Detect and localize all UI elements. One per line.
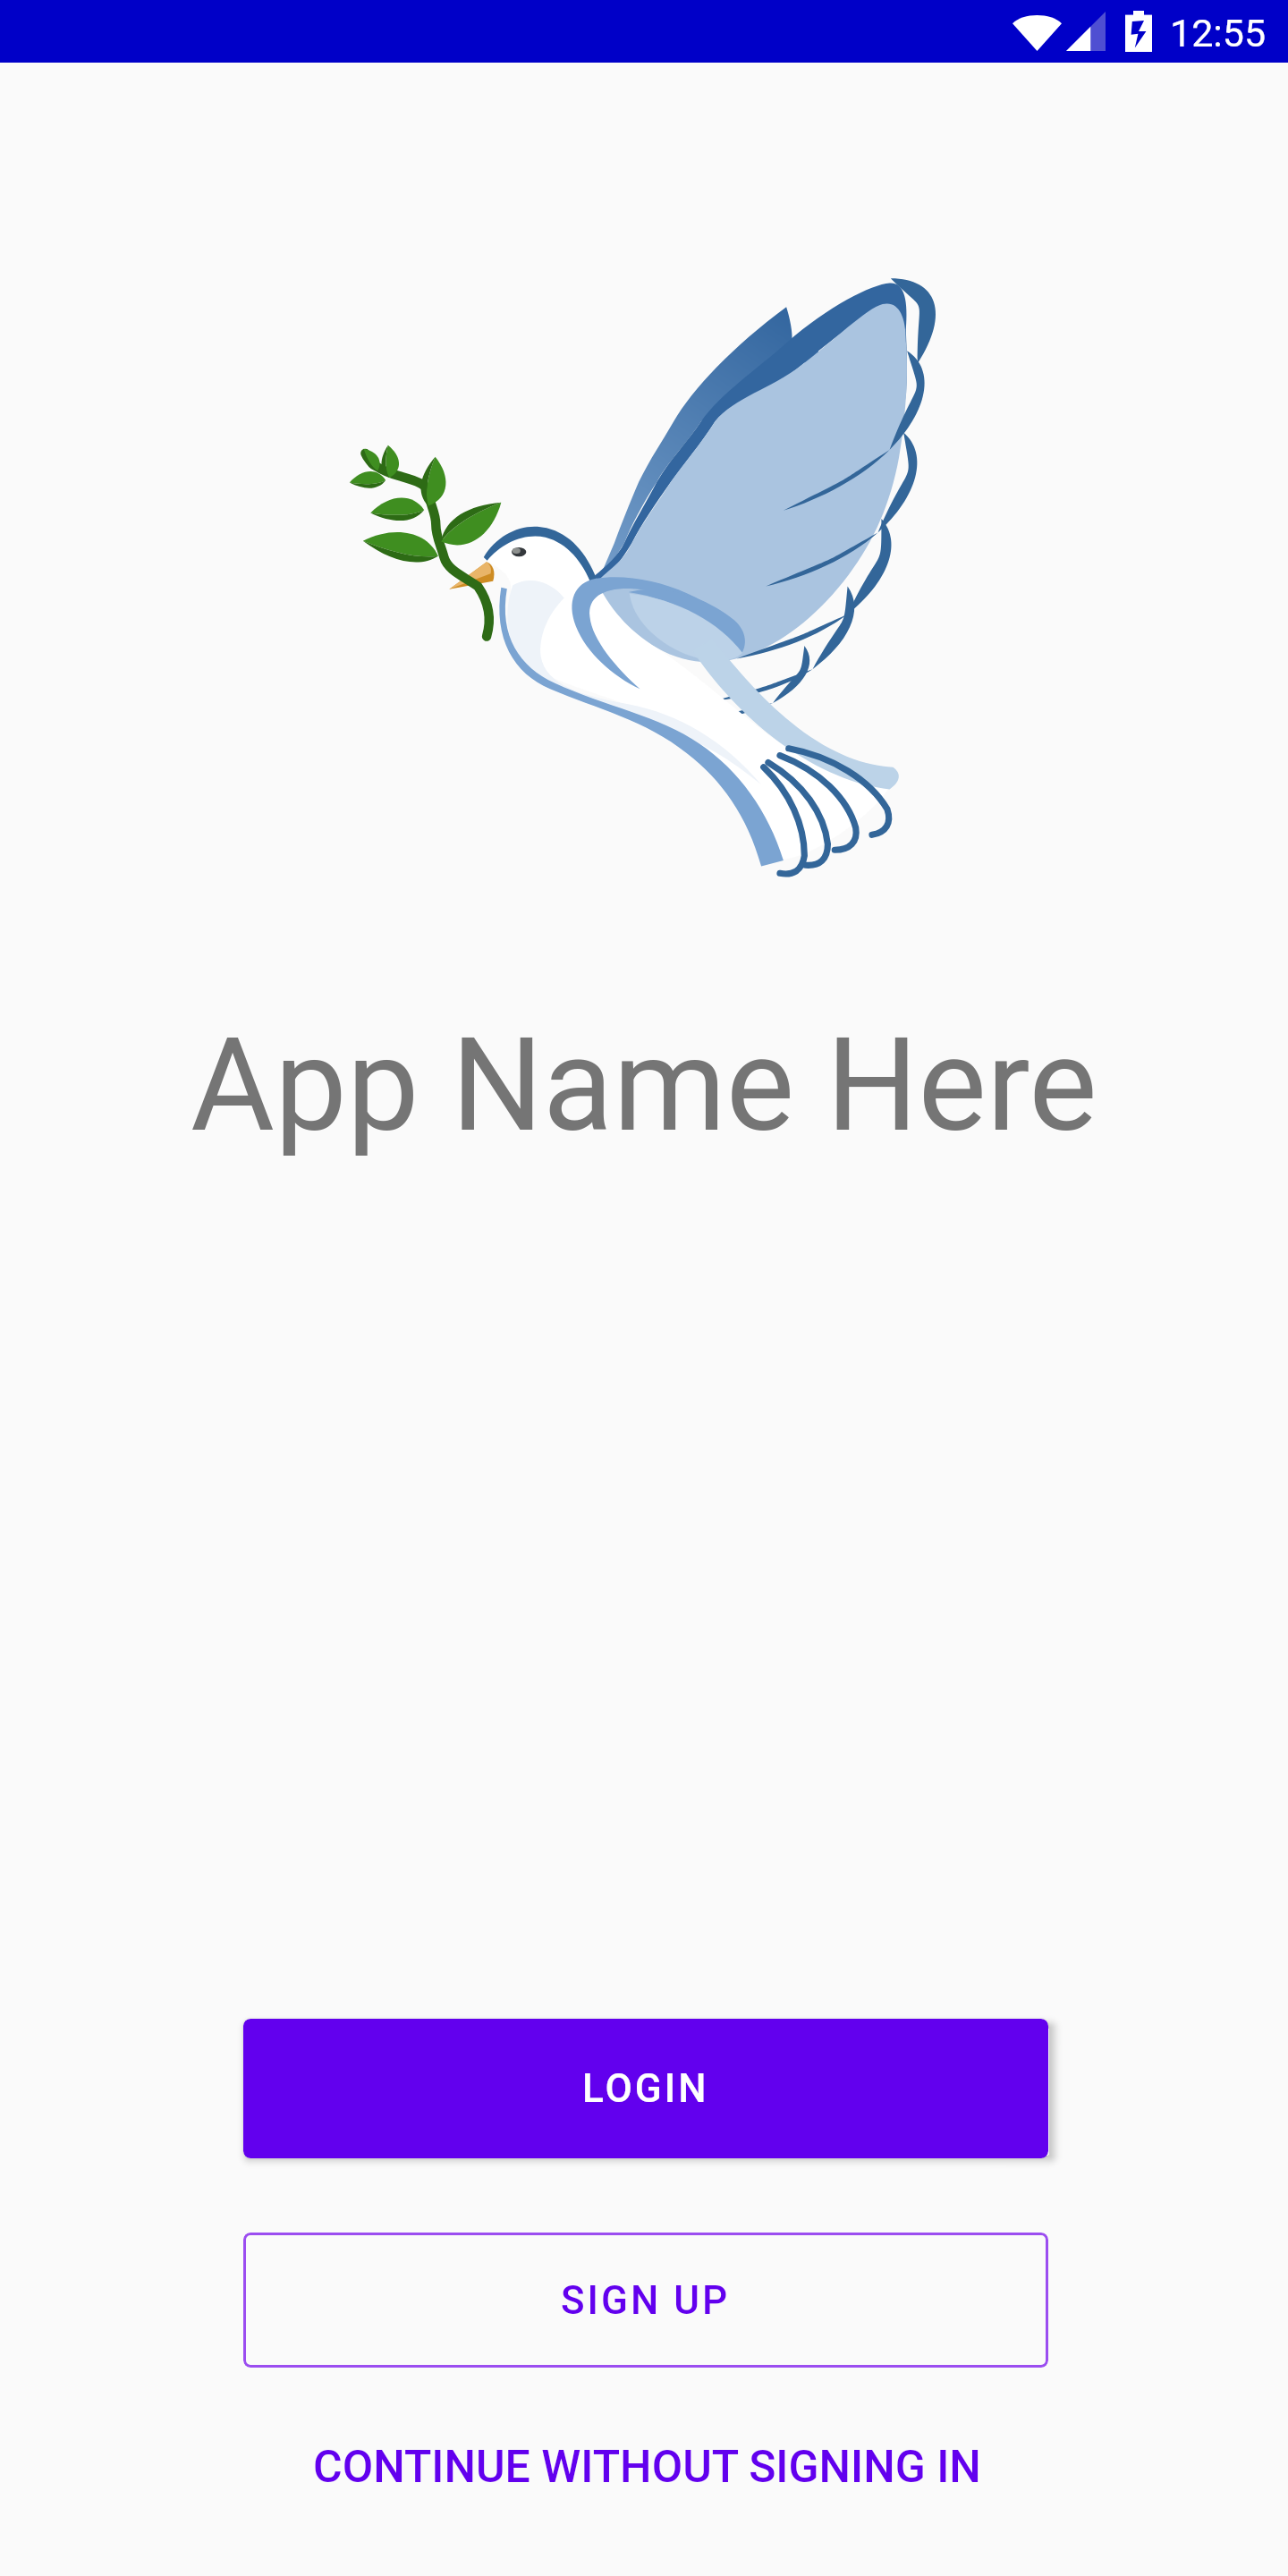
other: Battery charging: [1125, 11, 1152, 52]
staticText: 12:55: [1170, 11, 1267, 55]
button[interactable]: SIGN UP: [243, 2233, 1048, 2368]
staticText: App Name Here: [191, 1010, 1097, 1161]
staticText: CONTINUE WITHOUT SIGNING IN: [313, 2441, 981, 2494]
button[interactable]: LOGIN: [243, 2019, 1048, 2158]
staticText: LOGIN: [582, 2065, 709, 2112]
staticText: SIGN UP: [561, 2277, 731, 2324]
other: Wi-Fi: [1013, 12, 1062, 51]
other: Mobile signal: [1066, 12, 1106, 51]
button[interactable]: CONTINUE WITHOUT SIGNING IN: [3, 2411, 1288, 2522]
